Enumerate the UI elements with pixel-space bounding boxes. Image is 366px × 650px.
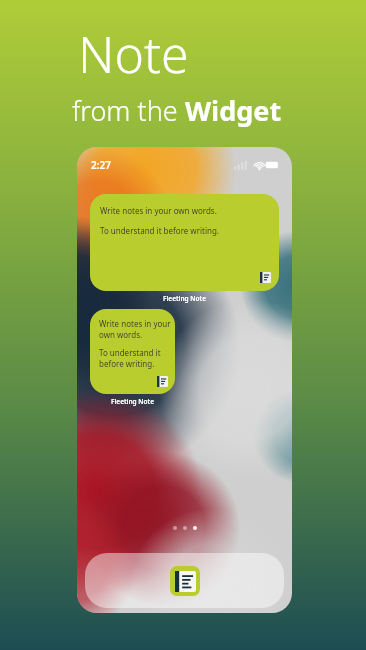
button[interactable]: Write notes in your own words. bbox=[90, 194, 279, 291]
staticText: Write notes in your own words. bbox=[99, 318, 171, 340]
staticText: from the bbox=[72, 92, 185, 129]
button[interactable]: Fleeting Note app bbox=[170, 566, 200, 596]
staticText: 2:27 bbox=[91, 158, 111, 172]
button[interactable]: Write notes in your own words. bbox=[90, 309, 175, 394]
staticText: Note bbox=[78, 20, 189, 88]
staticText: Widget bbox=[185, 92, 282, 129]
staticText: Fleeting Note bbox=[111, 397, 154, 406]
staticText: Write notes in your own words. bbox=[100, 205, 217, 216]
staticText: To understand it before writing. bbox=[99, 347, 161, 369]
staticText: To understand it before writing. bbox=[100, 225, 219, 236]
staticText: Fleeting Note bbox=[163, 294, 206, 303]
